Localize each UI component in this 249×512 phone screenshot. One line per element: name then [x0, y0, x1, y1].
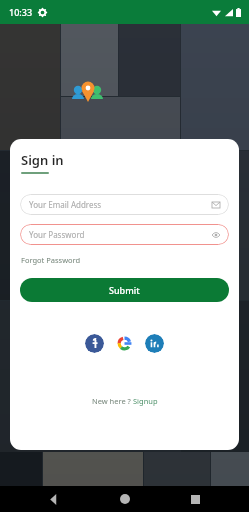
- staticText: Sign in: [21, 151, 64, 169]
- button[interactable]: Back: [48, 494, 59, 505]
- staticText: New here ?: [92, 396, 133, 406]
- staticText: Submit: [109, 284, 140, 296]
- staticText: 10:33: [9, 6, 33, 18]
- staticText: Signup: [133, 396, 158, 406]
- button[interactable]: Forgot Password: [21, 255, 81, 265]
- button[interactable]: New here ?: [10, 396, 239, 406]
- button[interactable]: Sign in with Facebook: [85, 334, 104, 353]
- staticText: Forgot Password: [21, 255, 81, 265]
- button[interactable]: Your Password: [20, 224, 229, 245]
- button[interactable]: Home: [120, 494, 130, 504]
- staticText: Your Password: [29, 229, 212, 240]
- staticText: Your Email Address: [29, 199, 212, 210]
- button[interactable]: Submit: [20, 278, 229, 302]
- button[interactable]: Sign in with LinkedIn: [145, 334, 164, 353]
- button[interactable]: Sign in with Google: [115, 334, 134, 353]
- button[interactable]: Your Email Address: [20, 194, 229, 215]
